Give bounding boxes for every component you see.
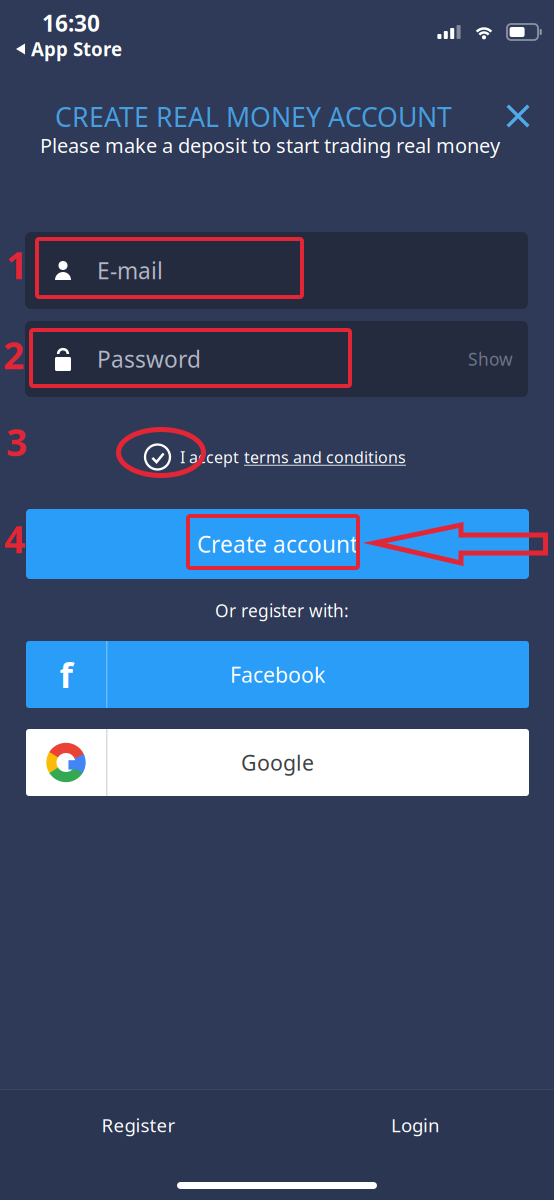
- staticText: f: [59, 651, 72, 697]
- staticText: Register: [101, 1113, 175, 1137]
- staticText: App Store: [31, 37, 122, 61]
- staticText: 4: [4, 514, 25, 564]
- button[interactable]: I accept: [144, 437, 406, 477]
- staticText: Or register with:: [215, 599, 349, 622]
- button[interactable]: E-mail: [25, 232, 528, 309]
- staticText: Facebook: [230, 660, 325, 689]
- staticText: Show: [468, 347, 513, 370]
- staticText: 16:30: [42, 8, 100, 38]
- staticText: 1: [6, 240, 27, 290]
- staticText: CREATE REAL MONEY ACCOUNT: [55, 99, 452, 134]
- staticText: Please make a deposit to start trading r…: [40, 132, 500, 159]
- button[interactable]: Google: [26, 729, 529, 796]
- staticText: Google: [241, 748, 314, 777]
- button[interactable]: Back to App Store: [16, 37, 122, 61]
- button[interactable]: Close: [496, 94, 540, 138]
- button[interactable]: Login: [277, 1090, 554, 1160]
- staticText: 2: [3, 330, 24, 380]
- staticText: Login: [391, 1113, 440, 1137]
- staticText: terms and conditions: [244, 446, 406, 468]
- button[interactable]: Create account: [26, 509, 529, 579]
- staticText: Create account: [197, 529, 358, 559]
- button[interactable]: Facebook: [26, 641, 529, 708]
- staticText: E-mail: [97, 255, 163, 285]
- staticText: 3: [6, 417, 27, 467]
- button[interactable]: Password: [25, 321, 528, 397]
- button[interactable]: Register: [0, 1090, 277, 1160]
- button[interactable]: Show: [468, 339, 528, 379]
- staticText: I accept: [180, 446, 239, 468]
- staticText: Password: [97, 344, 201, 374]
